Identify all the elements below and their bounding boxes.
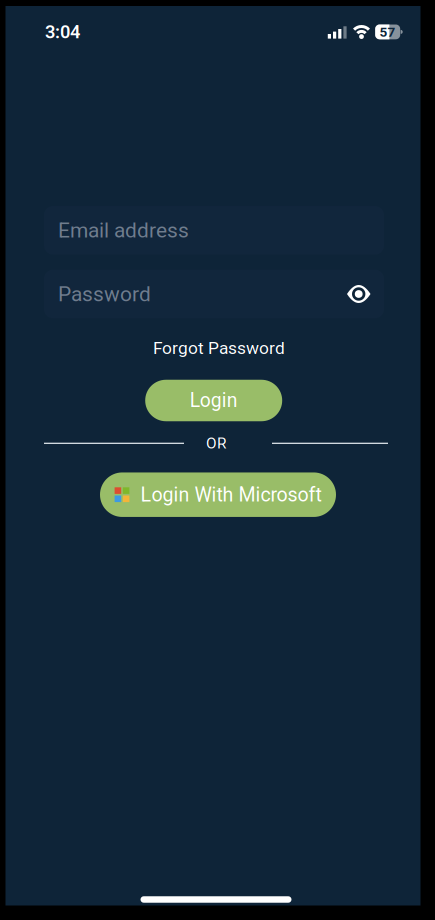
button[interactable]: Email address xyxy=(44,206,384,255)
staticText: Password xyxy=(58,282,151,306)
button[interactable]: Show password xyxy=(339,277,379,311)
staticText: OR xyxy=(206,434,226,452)
staticText: Email address xyxy=(58,218,189,242)
button[interactable]: Login xyxy=(145,380,282,421)
button[interactable]: Password xyxy=(44,270,384,318)
button[interactable]: Login With Microsoft xyxy=(100,472,336,517)
staticText: Forgot Password xyxy=(153,338,285,358)
button[interactable]: Forgot Password xyxy=(153,338,285,358)
staticText: Login xyxy=(190,389,238,412)
staticText: 57 xyxy=(379,24,395,40)
staticText: Login With Microsoft xyxy=(140,483,321,506)
staticText: 3:04 xyxy=(45,21,80,43)
